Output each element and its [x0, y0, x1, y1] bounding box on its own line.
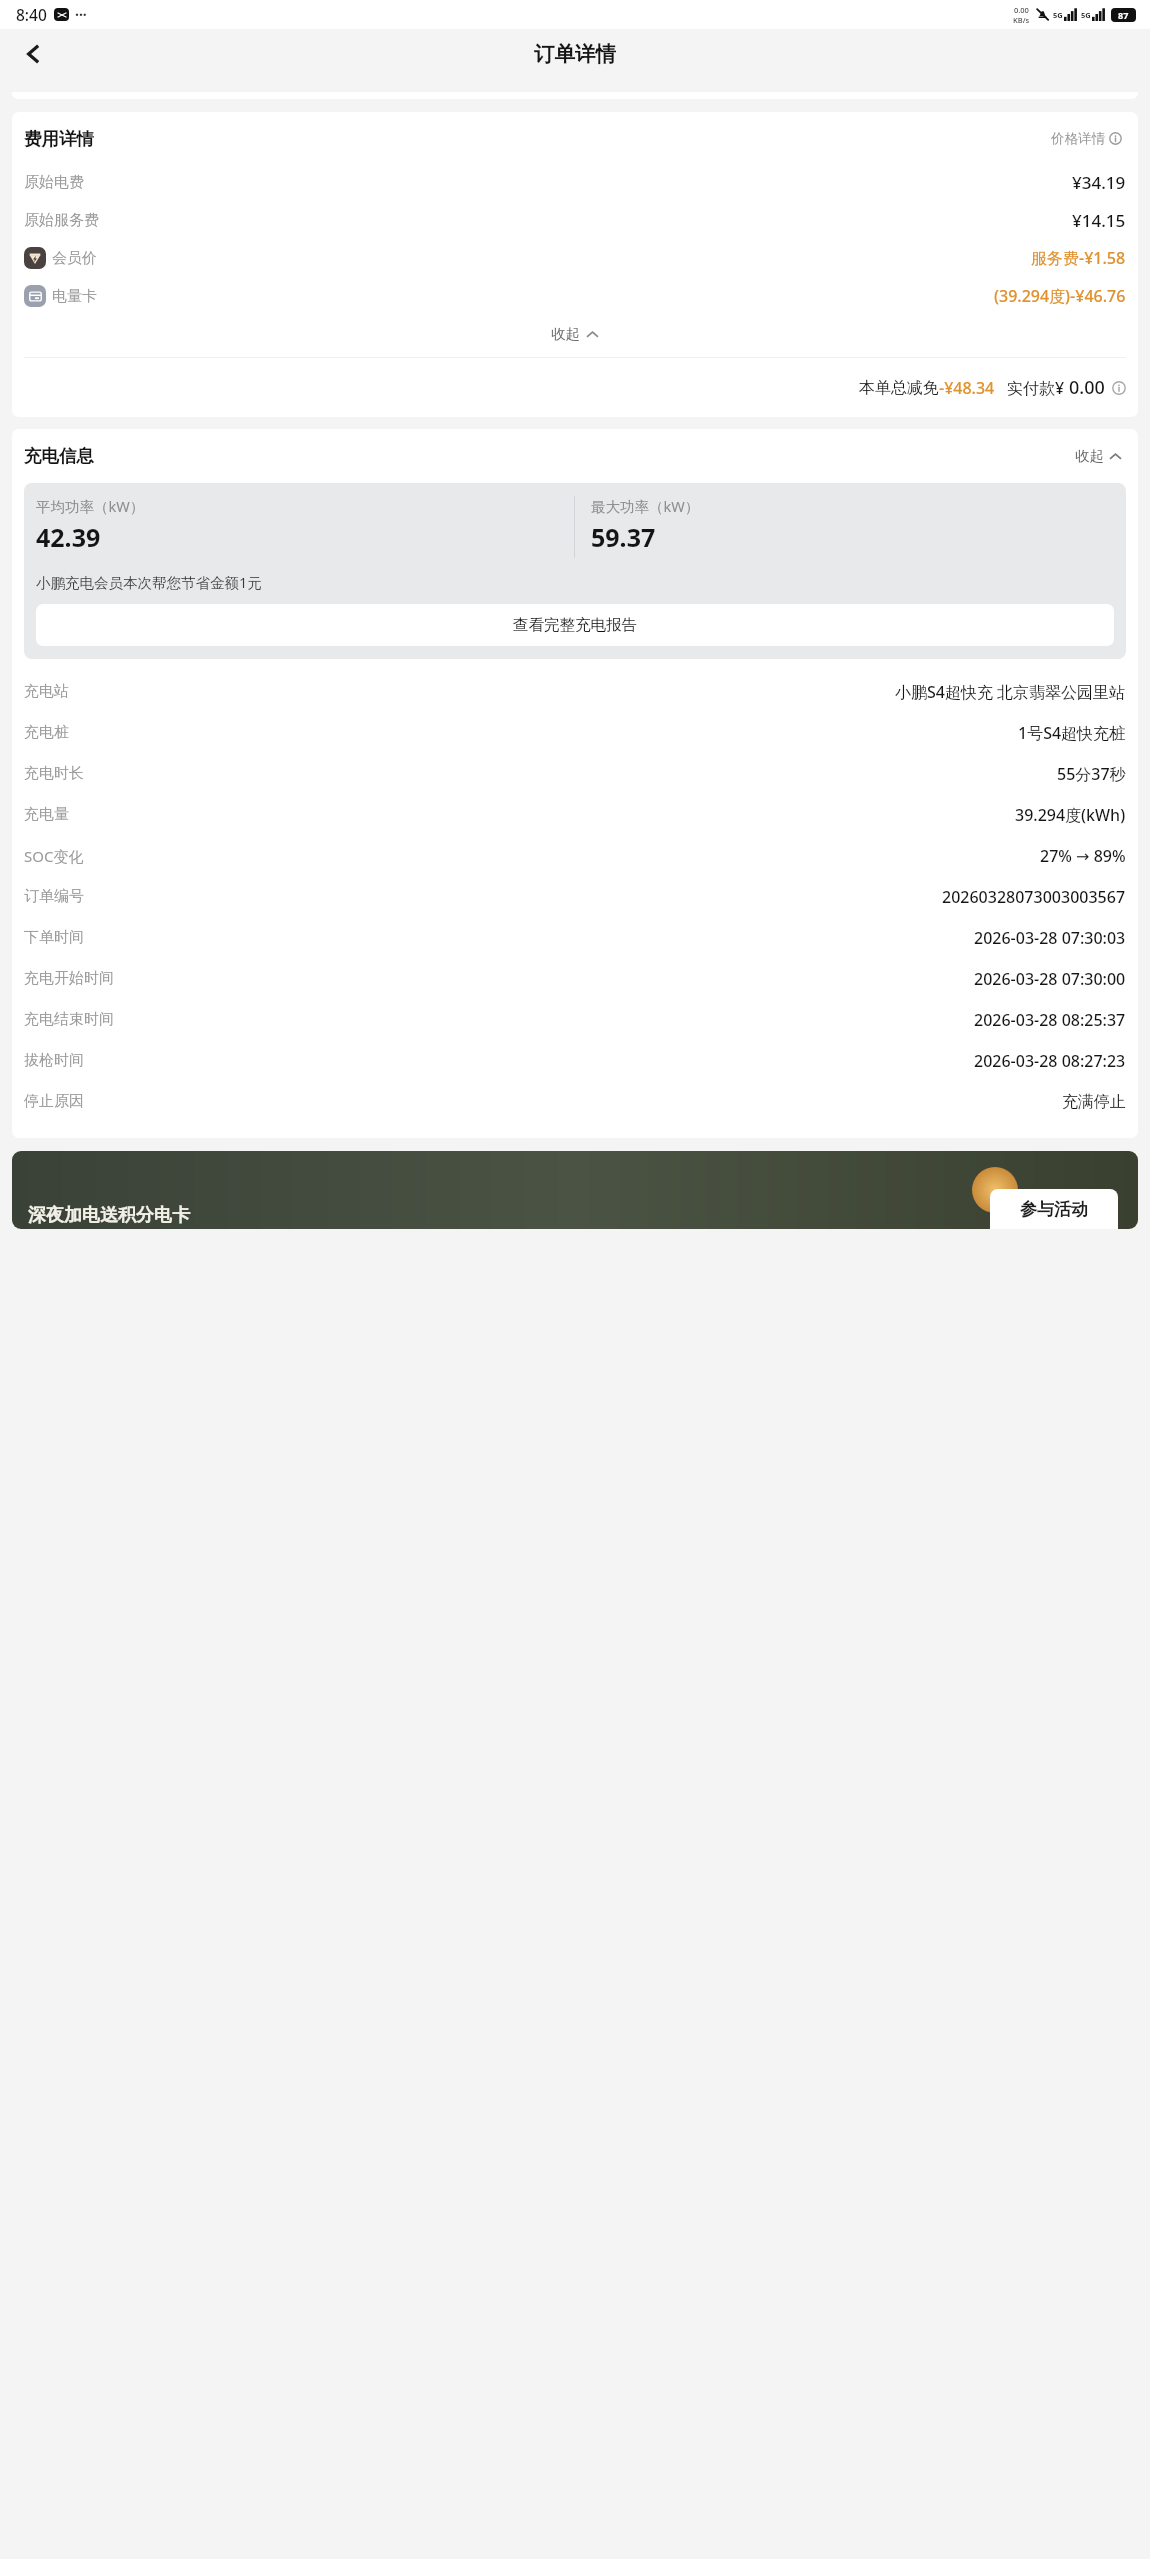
staticText: 最大功率（kW） [591, 496, 700, 516]
staticText: 充电时长 [24, 764, 84, 783]
staticText: 会员价 [52, 249, 97, 268]
button[interactable]: 收起 [24, 319, 1126, 349]
staticText: 订单详情 [534, 41, 616, 67]
staticText: 充电结束时间 [24, 1010, 114, 1029]
staticText: 小鹏S4超快充 北京翡翠公园里站 [895, 681, 1126, 703]
staticText: 停止原因 [24, 1092, 84, 1111]
staticText: 电量卡 [52, 287, 97, 306]
staticText: 39.294度(kWh) [1015, 804, 1126, 826]
staticText: 59.37 [591, 520, 656, 554]
staticText: KB/s [1013, 15, 1030, 25]
staticText: 充电站 [24, 682, 69, 701]
staticText: 87 [1118, 9, 1129, 21]
staticText: 原始服务费 [24, 211, 99, 230]
staticText: 下单时间 [24, 928, 84, 947]
staticText: 小鹏充电会员本次帮您节省金额1元 [36, 572, 262, 592]
staticText: 费用详情 [24, 128, 94, 150]
staticText: 充电信息 [24, 445, 94, 467]
staticText: 充电量 [24, 805, 69, 824]
staticText: 原始电费 [24, 173, 84, 192]
staticText: 充电开始时间 [24, 969, 114, 988]
staticText: 订单编号 [24, 887, 84, 906]
staticText: -¥48.34 [939, 377, 995, 399]
staticText: 42.39 [36, 520, 101, 554]
staticText: ¥14.15 [1072, 209, 1126, 232]
staticText: 27% → 89% [1040, 845, 1126, 867]
staticText: (39.294度)-¥46.76 [994, 285, 1126, 307]
staticText: 服务费-¥1.58 [1031, 247, 1126, 269]
button[interactable]: 深夜加电送积分电卡 [12, 1151, 1138, 1229]
staticText: SOC变化 [24, 846, 84, 866]
staticText: 2026-03-28 07:30:00 [974, 968, 1126, 990]
staticText: ··· [75, 5, 87, 24]
staticText: 本单总减免 [859, 378, 939, 398]
staticText: 参与活动 [1020, 1199, 1088, 1220]
staticText: 0.00 [1069, 375, 1105, 400]
staticText: 2026-03-28 07:30:03 [974, 927, 1126, 949]
staticText: 5G [1053, 10, 1063, 20]
staticText: 平均功率（kW） [36, 496, 145, 516]
staticText: 2026-03-28 08:27:23 [974, 1050, 1126, 1072]
staticText: 收起 [1075, 447, 1104, 465]
staticText: 1号S4超快充桩 [1018, 722, 1126, 744]
button[interactable]: 查看完整充电报告 [36, 604, 1114, 646]
staticText: 充电桩 [24, 723, 69, 742]
staticText: 收起 [551, 325, 580, 343]
button[interactable]: 价格详情 [1047, 126, 1126, 151]
staticText: 实付款¥ [1007, 377, 1065, 399]
staticText: 深夜加电送积分电卡 [28, 1204, 190, 1227]
staticText: 查看完整充电报告 [513, 615, 637, 635]
button[interactable]: 参与活动 [990, 1189, 1118, 1229]
staticText: ¥34.19 [1072, 171, 1126, 194]
staticText: 55分37秒 [1057, 763, 1126, 785]
staticText: 充满停止 [1062, 1092, 1126, 1112]
button[interactable]: 收起 [1071, 443, 1126, 469]
staticText: 拔枪时间 [24, 1051, 84, 1070]
staticText: 2026-03-28 08:25:37 [974, 1009, 1126, 1031]
staticText: 8:40 [16, 4, 47, 25]
staticText: 价格详情 [1051, 130, 1105, 147]
staticText: 20260328073003003567 [942, 886, 1126, 908]
button[interactable]: Back [10, 31, 56, 77]
staticText: 5G [1081, 10, 1091, 20]
staticText: 0.00 [1014, 5, 1029, 15]
